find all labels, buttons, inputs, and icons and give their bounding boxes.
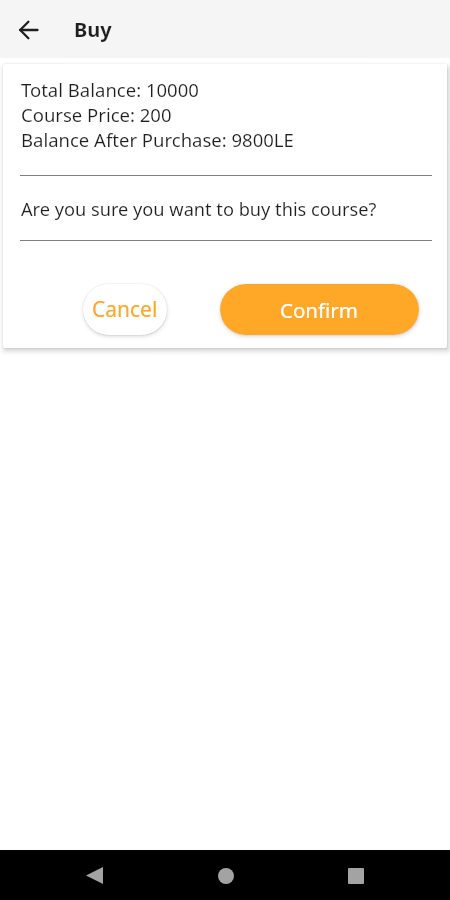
staticText: Cancel xyxy=(92,295,158,324)
staticText: Balance After Purchase: 9800LE xyxy=(21,127,294,152)
staticText: Confirm xyxy=(280,296,359,324)
button[interactable]: Confirm xyxy=(220,284,419,335)
staticText: Buy xyxy=(74,16,112,43)
button[interactable]: Back xyxy=(8,9,48,49)
staticText: Total Balance: 10000 xyxy=(21,77,199,102)
button[interactable]: Back xyxy=(70,851,119,900)
staticText: Are you sure you want to buy this course… xyxy=(21,197,377,222)
button[interactable]: Recent apps xyxy=(331,851,380,900)
button[interactable]: Home xyxy=(201,851,250,900)
button[interactable]: Cancel xyxy=(83,284,167,335)
staticText: Course Price: 200 xyxy=(21,102,172,127)
